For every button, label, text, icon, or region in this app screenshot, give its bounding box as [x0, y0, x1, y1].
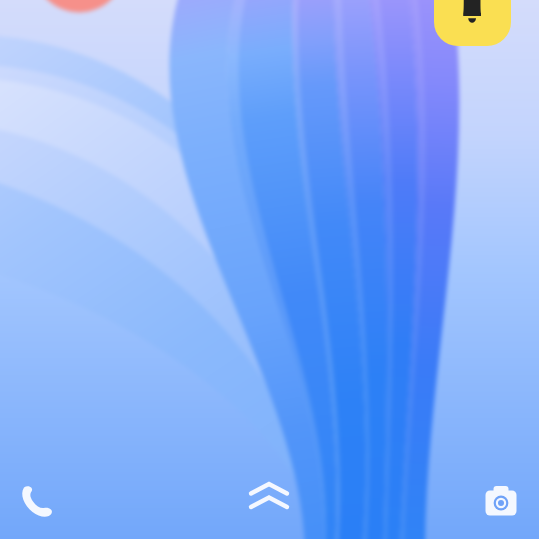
button[interactable]: Camera — [478, 478, 524, 524]
button[interactable]: Phone — [13, 479, 61, 527]
button[interactable]: Unlock — [241, 474, 297, 518]
button[interactable]: Notifications — [434, 0, 511, 46]
